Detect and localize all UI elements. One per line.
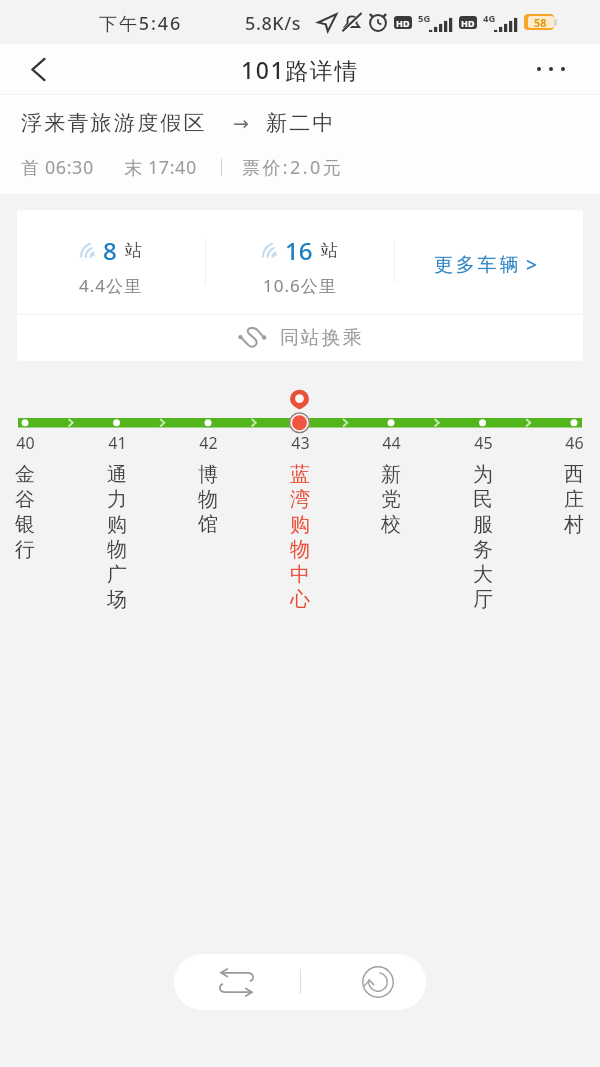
staticText: 庄 bbox=[564, 487, 584, 512]
staticText: 16 bbox=[285, 234, 313, 267]
staticText: 场 bbox=[107, 587, 127, 612]
staticText: 广 bbox=[107, 562, 127, 587]
button[interactable]: 40 bbox=[4, 432, 46, 562]
staticText: 购 bbox=[290, 512, 310, 537]
staticText: 为 bbox=[473, 462, 493, 487]
button[interactable]: 同站换乘 bbox=[17, 315, 583, 361]
staticText: 新二中 bbox=[266, 110, 336, 136]
staticText: HD bbox=[461, 17, 475, 29]
staticText: 44 bbox=[382, 432, 401, 454]
staticText: 银 bbox=[15, 512, 35, 537]
staticText: 服 bbox=[473, 512, 493, 537]
button[interactable]: 41 bbox=[96, 432, 138, 612]
staticText: 西 bbox=[564, 462, 584, 487]
staticText: → bbox=[233, 112, 249, 134]
button[interactable]: More options bbox=[529, 47, 573, 91]
staticText: 民 bbox=[473, 487, 493, 512]
button[interactable]: Swap direction bbox=[199, 954, 274, 1010]
staticText: 物 bbox=[107, 537, 127, 562]
staticText: 蓝 bbox=[290, 462, 310, 487]
staticText: 4.4公里 bbox=[79, 274, 143, 297]
staticText: 物 bbox=[290, 537, 310, 562]
staticText: 通 bbox=[107, 462, 127, 487]
staticText: 党 bbox=[381, 487, 401, 512]
staticText: 下午5:46 bbox=[99, 11, 183, 36]
staticText: 力 bbox=[107, 487, 127, 512]
staticText: 务 bbox=[473, 537, 493, 562]
staticText: 金 bbox=[15, 462, 35, 487]
staticText: 谷 bbox=[15, 487, 35, 512]
staticText: 中 bbox=[290, 562, 310, 587]
staticText: 43 bbox=[291, 432, 310, 454]
staticText: 物 bbox=[198, 487, 218, 512]
staticText: 同站换乘 bbox=[280, 326, 364, 350]
staticText: 浮来青旅游度假区 bbox=[21, 110, 207, 136]
staticText: > bbox=[526, 252, 537, 278]
staticText: 馆 bbox=[198, 512, 218, 537]
button[interactable]: 46 bbox=[553, 432, 595, 537]
button[interactable]: Refresh bbox=[340, 954, 415, 1010]
staticText: 末 17:40 bbox=[124, 155, 197, 180]
staticText: HD bbox=[396, 17, 410, 29]
staticText: 5.8K/s bbox=[245, 11, 302, 36]
button[interactable]: 43 bbox=[279, 432, 321, 612]
button[interactable]: 更多车辆 bbox=[395, 210, 583, 314]
staticText: 校 bbox=[381, 512, 401, 537]
staticText: 湾 bbox=[290, 487, 310, 512]
staticText: 更多车辆 bbox=[434, 253, 522, 277]
staticText: 10.6公里 bbox=[263, 274, 337, 297]
button[interactable]: 16 bbox=[206, 210, 394, 314]
button[interactable]: 44 bbox=[370, 432, 412, 537]
staticText: 40 bbox=[16, 432, 35, 454]
staticText: 新 bbox=[381, 462, 401, 487]
staticText: 购 bbox=[107, 512, 127, 537]
staticText: 46 bbox=[565, 432, 584, 454]
staticText: 45 bbox=[474, 432, 493, 454]
staticText: 心 bbox=[290, 587, 310, 612]
staticText: 厅 bbox=[473, 587, 493, 612]
staticText: 58 bbox=[534, 15, 547, 30]
staticText: 站 bbox=[125, 240, 142, 261]
staticText: 行 bbox=[15, 537, 35, 562]
staticText: 博 bbox=[198, 462, 218, 487]
button[interactable]: Back bbox=[14, 45, 62, 93]
button[interactable]: 8 bbox=[17, 210, 205, 314]
staticText: 票价:2.0元 bbox=[242, 155, 344, 180]
staticText: 5G bbox=[418, 12, 431, 25]
staticText: 村 bbox=[564, 512, 584, 537]
staticText: 4G bbox=[483, 12, 496, 25]
staticText: 站 bbox=[321, 240, 338, 261]
staticText: 101路详情 bbox=[241, 54, 360, 85]
staticText: 41 bbox=[108, 432, 127, 454]
staticText: 大 bbox=[473, 562, 493, 587]
staticText: 42 bbox=[199, 432, 218, 454]
staticText: 首 06:30 bbox=[21, 155, 94, 180]
staticText: 8 bbox=[103, 234, 117, 267]
button[interactable]: 45 bbox=[462, 432, 504, 612]
button[interactable]: 42 bbox=[187, 432, 229, 537]
